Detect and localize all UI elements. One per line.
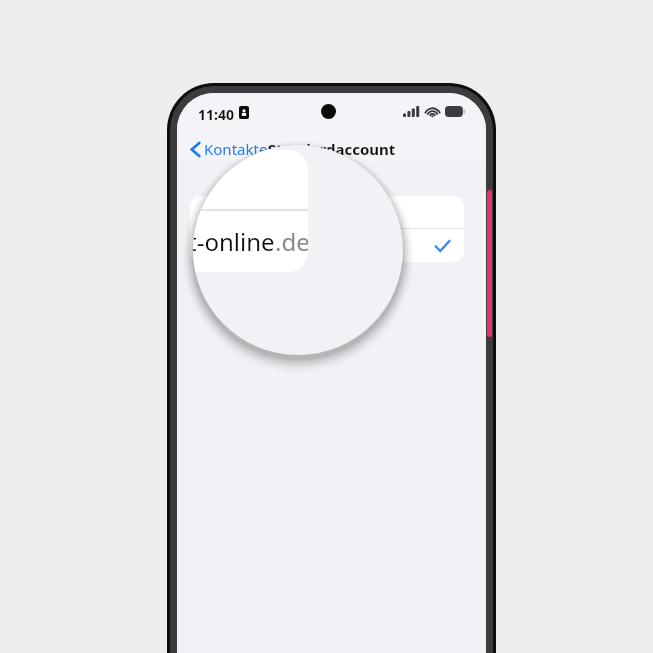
other: Selected	[435, 240, 450, 252]
button[interactable]: spica.t-online	[193, 211, 308, 272]
button[interactable]: Kontakte	[189, 137, 270, 161]
staticText: iCloud	[204, 203, 243, 221]
staticText: spica.t-online	[193, 225, 275, 258]
staticText: spica.t-online	[204, 237, 286, 255]
button[interactable]: iCloud	[190, 196, 464, 228]
staticText: 11:40	[198, 105, 234, 124]
button[interactable]: iCloud	[193, 150, 308, 209]
staticText: Standardaccount	[177, 139, 486, 159]
button[interactable]: spica.t-online	[190, 229, 464, 262]
staticText: Kontakte	[204, 139, 268, 159]
staticText: .de	[286, 237, 305, 255]
staticText: .de	[275, 225, 308, 258]
